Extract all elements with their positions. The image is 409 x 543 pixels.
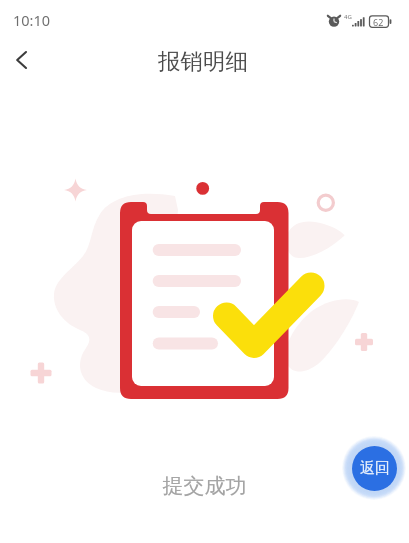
button[interactable]: 返回 (342, 435, 406, 499)
staticText: 返回 (360, 459, 390, 478)
button[interactable]: Back (0, 38, 44, 82)
staticText: 提交成功 (0, 473, 409, 499)
staticText: 4G (344, 13, 352, 21)
staticText: 10:10 (13, 10, 51, 30)
staticText: 62 (373, 16, 384, 28)
staticText: 报销明细 (158, 47, 248, 75)
